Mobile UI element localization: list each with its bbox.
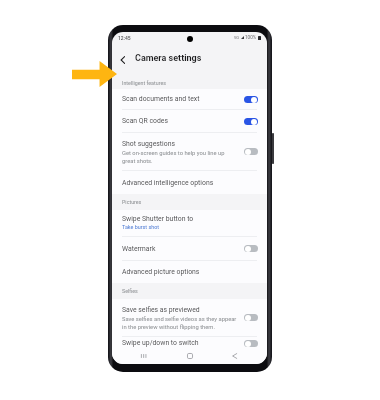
button[interactable]: Home — [183, 349, 197, 363]
staticText: Camera settings — [135, 53, 202, 64]
staticText: Intelligent features — [122, 80, 166, 86]
button[interactable]: Scan documents and text — [112, 89, 267, 109]
staticText: Scan QR codes — [122, 117, 168, 125]
staticText: Swipe up/down to switch — [122, 339, 199, 347]
staticText: Watermark — [122, 245, 156, 253]
staticText: 5G — [234, 35, 240, 40]
staticText: 100% — [245, 35, 257, 40]
button[interactable]: Recent apps — [137, 349, 151, 363]
staticText: Swipe Shutter button to — [122, 215, 194, 223]
staticText: 12:45 — [118, 35, 131, 41]
staticText: Scan documents and text — [122, 95, 200, 103]
button[interactable]: Back — [227, 349, 241, 363]
staticText: Save selfies and selfie videos as they a… — [122, 316, 237, 330]
button[interactable]: Watermark — [112, 237, 267, 260]
staticText: Selfies — [122, 288, 138, 294]
button[interactable]: Swipe up/down to switch — [112, 337, 267, 349]
staticText: Advanced intelligence options — [122, 179, 214, 187]
staticText: Save selfies as previewed — [122, 306, 200, 314]
button[interactable]: Scan QR codes — [112, 110, 267, 132]
button[interactable]: Back — [116, 53, 129, 66]
staticText: Get on-screen guides to help you line up… — [122, 150, 225, 164]
button[interactable]: Advanced intelligence options — [112, 171, 267, 194]
staticText: Pictures — [122, 199, 142, 205]
button[interactable]: Save selfies as previewed — [112, 299, 267, 336]
staticText: Shot suggestions — [122, 140, 175, 148]
staticText: Advanced picture options — [122, 268, 200, 276]
button[interactable]: Swipe Shutter button to — [112, 210, 267, 236]
button[interactable]: Advanced picture options — [112, 261, 267, 283]
button[interactable]: Shot suggestions — [112, 133, 267, 170]
staticText: Take burst shot — [122, 224, 160, 230]
